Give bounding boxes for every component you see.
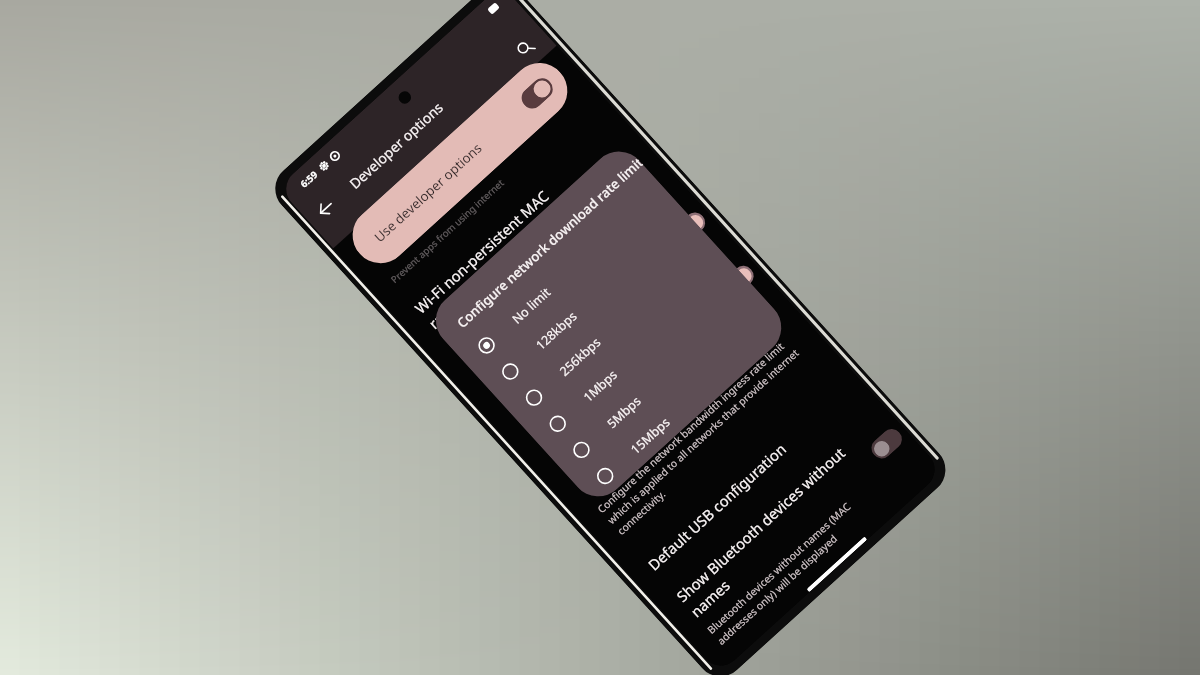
staticText: 256kbps bbox=[556, 333, 604, 379]
button[interactable]: Toggle bbox=[719, 261, 758, 299]
staticText: 128kbps bbox=[532, 307, 580, 353]
staticText: 15Mbps bbox=[627, 414, 673, 458]
button[interactable]: 5Mbps bbox=[549, 277, 769, 482]
staticText: Default USB configuration bbox=[644, 439, 790, 575]
button[interactable]: 128kbps bbox=[478, 199, 698, 403]
staticText: 1Mbps bbox=[579, 366, 621, 406]
button[interactable]: Toggle bbox=[867, 425, 906, 463]
button[interactable]: 1Mbps bbox=[525, 251, 745, 456]
staticText: Configure the network bandwidth ingress … bbox=[594, 335, 812, 538]
button[interactable]: No limit bbox=[454, 173, 674, 377]
staticText: Configure network download rate limit bbox=[453, 154, 646, 332]
staticText: 6:59 bbox=[297, 168, 320, 190]
staticText: 5Mbps bbox=[603, 392, 644, 432]
button[interactable]: 15Mbps bbox=[573, 303, 793, 508]
staticText: Use developer options bbox=[370, 139, 486, 246]
button[interactable]: 256kbps bbox=[501, 225, 722, 429]
button[interactable]: Search bbox=[502, 25, 548, 71]
staticText: Prevent apps from using internet bbox=[388, 176, 507, 286]
staticText: Developer options bbox=[345, 98, 447, 193]
staticText: Wi-Fi non-persistent MAC randomization bbox=[411, 186, 567, 333]
staticText: Show Bluetooth devices without names bbox=[672, 443, 863, 622]
button[interactable]: Use developer options bbox=[341, 51, 579, 275]
staticText: No limit bbox=[508, 284, 554, 327]
button[interactable]: Back bbox=[301, 184, 350, 233]
staticText: Bluetooth devices without names (MAC add… bbox=[704, 499, 863, 648]
button[interactable]: Toggle bbox=[671, 208, 709, 246]
